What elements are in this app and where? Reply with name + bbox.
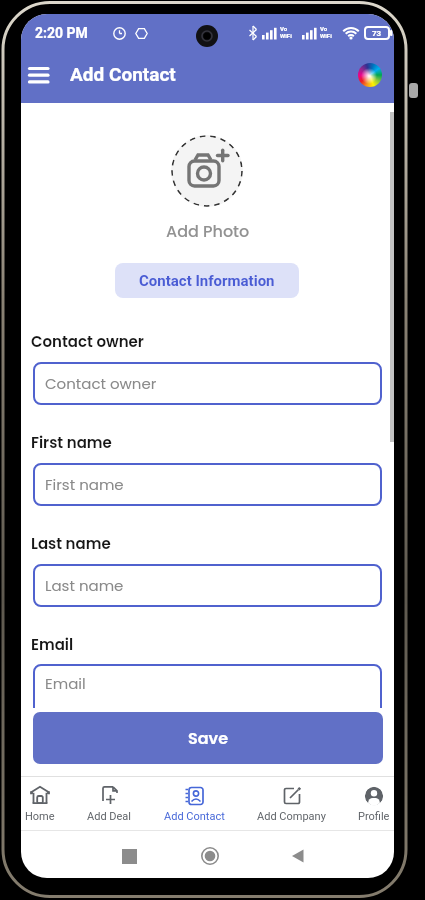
staticText: WiFi bbox=[320, 32, 332, 39]
staticText: Profile bbox=[358, 810, 390, 823]
button[interactable] bbox=[25, 62, 53, 88]
staticText: Add Photo bbox=[166, 220, 250, 242]
button[interactable] bbox=[171, 135, 243, 207]
button[interactable]: Add Deal bbox=[87, 784, 132, 823]
staticText: Save bbox=[188, 727, 229, 749]
button[interactable]: Save bbox=[33, 712, 383, 764]
button[interactable]: Last name bbox=[33, 564, 382, 607]
button[interactable]: First name bbox=[33, 463, 382, 506]
staticText: First name bbox=[31, 432, 112, 453]
staticText: 2:20 PM bbox=[35, 25, 88, 41]
staticText: WiFi bbox=[280, 32, 292, 39]
staticText: Email bbox=[31, 634, 74, 655]
staticText: Vo bbox=[320, 25, 328, 32]
staticText: 73 bbox=[372, 29, 382, 38]
button[interactable]: Email bbox=[33, 664, 382, 708]
staticText: First name bbox=[45, 474, 124, 495]
staticText: Vo bbox=[280, 25, 288, 32]
staticText: Add Contact bbox=[164, 810, 225, 823]
button[interactable] bbox=[120, 847, 138, 865]
staticText: Add Company bbox=[257, 810, 326, 823]
button[interactable] bbox=[289, 847, 307, 865]
button[interactable]: Contact Information bbox=[115, 263, 299, 298]
button[interactable]: Profile bbox=[358, 784, 390, 823]
staticText: Contact owner bbox=[45, 373, 157, 394]
staticText: Email bbox=[45, 673, 86, 694]
button[interactable]: Add Contact bbox=[164, 784, 225, 823]
staticText: Add Deal bbox=[87, 810, 132, 823]
button[interactable] bbox=[358, 63, 382, 87]
button[interactable]: Add Company bbox=[257, 784, 326, 823]
staticText: Home bbox=[25, 810, 55, 823]
staticText: Contact Information bbox=[139, 272, 275, 290]
staticText: Last name bbox=[45, 575, 124, 596]
staticText: Last name bbox=[31, 533, 111, 554]
staticText: Add Contact bbox=[70, 63, 176, 85]
staticText: Contact owner bbox=[31, 331, 144, 352]
button[interactable]: Contact owner bbox=[33, 362, 382, 405]
button[interactable]: Home bbox=[25, 784, 55, 823]
button[interactable] bbox=[201, 847, 219, 865]
